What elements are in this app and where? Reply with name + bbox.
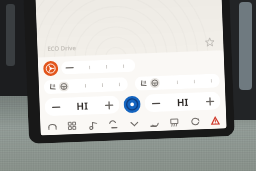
button[interactable]: Airflow body — [127, 117, 141, 130]
button[interactable]: Increase temperature — [103, 100, 114, 110]
other: Seat heater — [47, 82, 57, 92]
button[interactable]: Fan power — [43, 61, 58, 76]
button[interactable]: Seat heater — [44, 77, 128, 94]
staticText: HI — [160, 94, 205, 110]
button[interactable]: Media — [86, 118, 100, 132]
button[interactable]: Hazard lights — [208, 113, 222, 127]
button[interactable]: Air conditioning — [123, 96, 141, 113]
button[interactable]: Airflow face — [106, 117, 120, 131]
button[interactable]: Decrease temperature — [50, 102, 61, 112]
staticText: HI — [60, 98, 104, 114]
button[interactable]: Decrease temperature — [44, 95, 120, 116]
button[interactable]: Recirculation — [188, 114, 202, 128]
button[interactable]: Defrost — [167, 115, 181, 129]
button[interactable]: Seat heater — [135, 73, 220, 91]
button[interactable]: Airflow feet — [147, 116, 161, 129]
button[interactable]: Decrease temperature — [144, 91, 221, 112]
button[interactable]: Decrease temperature — [150, 98, 161, 108]
button[interactable]: Increase temperature — [204, 96, 215, 106]
button[interactable]: Apps — [65, 119, 79, 132]
button[interactable]: Home — [45, 120, 59, 133]
other: Seat heater — [138, 78, 148, 89]
staticText: ECO Drive — [47, 44, 77, 53]
button[interactable]: Favorite — [203, 36, 216, 48]
button[interactable] — [61, 59, 135, 75]
